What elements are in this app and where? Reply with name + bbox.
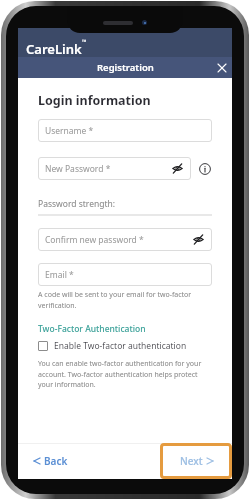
- button[interactable]: Enable Two-factor authentication: [38, 340, 187, 352]
- button[interactable]: Show password: [171, 162, 184, 175]
- staticText: Back: [44, 454, 68, 468]
- staticText: Next: [180, 454, 203, 468]
- staticText: Registration: [97, 61, 154, 74]
- staticText: New Password *: [45, 163, 171, 175]
- staticText: A code will be sent to your email for tw…: [38, 290, 212, 310]
- staticText: Login information: [38, 92, 151, 109]
- button[interactable]: Back: [34, 454, 68, 468]
- button[interactable]: Close: [212, 58, 232, 78]
- button[interactable]: Confirm new password *: [38, 228, 212, 251]
- button[interactable]: Show password: [192, 233, 205, 246]
- button[interactable]: New Password *: [38, 157, 191, 180]
- staticText: Two-Factor Authentication: [38, 323, 146, 335]
- staticText: CareLink: [26, 40, 82, 58]
- button[interactable]: Password information: [198, 162, 212, 176]
- staticText: ™: [82, 38, 87, 46]
- staticText: Email *: [45, 269, 205, 281]
- staticText: Password strength:: [38, 198, 116, 210]
- button[interactable]: Next: [160, 443, 232, 479]
- staticText: Username *: [45, 125, 205, 137]
- button[interactable]: Username *: [38, 119, 212, 142]
- button[interactable]: Email *: [38, 263, 212, 286]
- staticText: You can enable two-factor authentication…: [38, 359, 212, 389]
- staticText: Enable Two-factor authentication: [54, 340, 187, 352]
- staticText: Confirm new password *: [45, 234, 192, 246]
